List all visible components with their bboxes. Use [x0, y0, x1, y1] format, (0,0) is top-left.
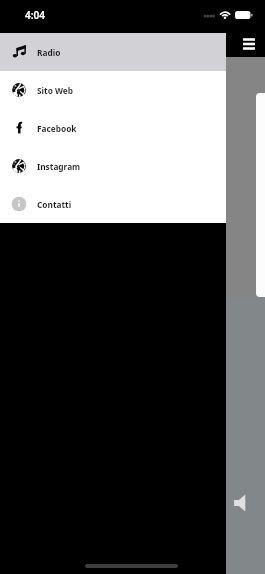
staticText: Sito Web: [37, 85, 74, 96]
button[interactable]: Volume: [231, 490, 257, 516]
button[interactable]: Sito Web: [0, 71, 226, 109]
staticText: Instagram: [37, 161, 81, 172]
staticText: Facebook: [37, 123, 77, 134]
button[interactable]: Contatti: [0, 185, 226, 223]
button[interactable]: Open navigation menu: [231, 31, 260, 57]
button[interactable]: Facebook: [0, 109, 226, 147]
button[interactable]: Instagram: [0, 147, 226, 185]
staticText: Contatti: [37, 199, 72, 210]
staticText: Radio: [37, 47, 61, 58]
button[interactable]: Radio: [0, 33, 226, 71]
staticText: 4:04: [25, 8, 45, 22]
